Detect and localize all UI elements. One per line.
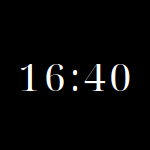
staticText: 16:40 [18, 50, 131, 102]
